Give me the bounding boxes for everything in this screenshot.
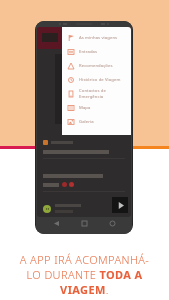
staticText: Entradas — [79, 49, 98, 55]
staticText: Recomendações — [79, 63, 113, 69]
button[interactable]: Recomendações — [62, 59, 131, 73]
button[interactable]: Histórico de Viagem — [62, 73, 131, 87]
button[interactable]: Back — [49, 217, 63, 230]
staticText: A APP IRÁ ACOMPANHÁ-LO DURANTE TODA A VI… — [14, 252, 155, 297]
button[interactable]: Contactos de Emergência — [62, 87, 131, 101]
button[interactable]: Recents — [105, 217, 119, 230]
button[interactable]: As minhas viagens — [62, 31, 131, 45]
staticText: Galeria — [79, 119, 94, 125]
button[interactable]: Mapa — [62, 101, 131, 115]
button[interactable]: Home — [77, 217, 91, 230]
staticText: Histórico de Viagem — [79, 77, 121, 83]
staticText: As minhas viagens — [79, 35, 118, 41]
staticText: Mapa — [79, 105, 91, 111]
button[interactable]: Play video — [112, 197, 128, 213]
button[interactable]: Entradas — [62, 45, 131, 59]
staticText: Contactos de Emergência — [79, 88, 131, 100]
button[interactable]: Galeria — [62, 115, 131, 129]
